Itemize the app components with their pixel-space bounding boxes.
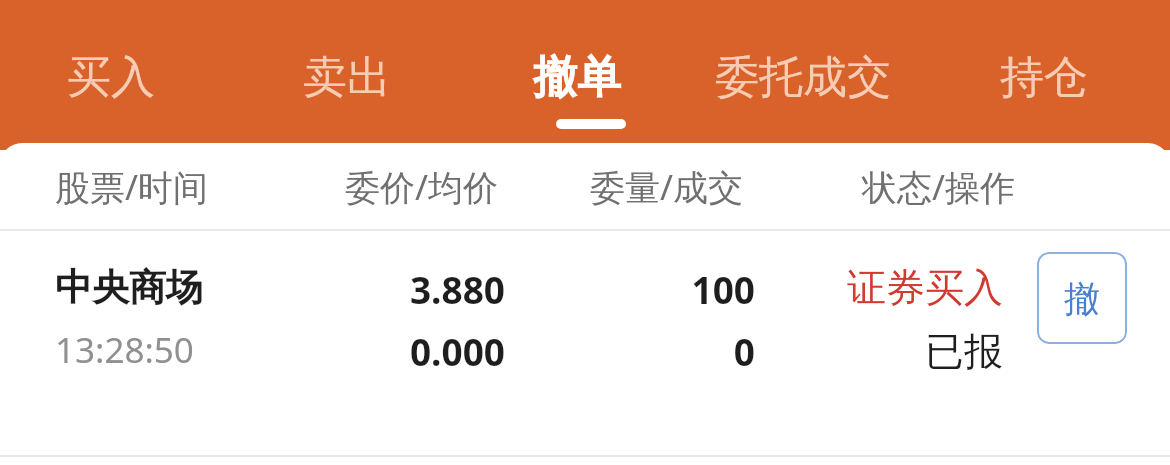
button[interactable]: 持仓 — [1000, 42, 1100, 112]
button[interactable]: 撤单 — [533, 42, 649, 112]
staticText: 委托成交 — [715, 50, 891, 105]
button[interactable]: 股票/时间 — [55, 159, 209, 215]
button[interactable]: 撤单 — [1037, 252, 1127, 344]
button[interactable]: 卖出 — [303, 42, 401, 112]
staticText: 持仓 — [1000, 50, 1088, 105]
staticText: 0 — [545, 326, 755, 376]
button[interactable]: 委价/均价 — [345, 159, 499, 215]
button[interactable]: 中央商场 — [0, 231, 1170, 455]
staticText: 已报 — [780, 327, 1003, 376]
staticText: 13:28:50 — [55, 326, 194, 374]
staticText: 买入 — [67, 50, 155, 105]
staticText: 股票/时间 — [55, 163, 209, 211]
staticText: 3.880 — [245, 264, 505, 314]
staticText: 状态/操作 — [862, 163, 1016, 211]
staticText: 委量/成交 — [590, 163, 744, 211]
button[interactable]: 委托成交 — [715, 42, 915, 112]
button[interactable]: 状态/操作 — [862, 159, 1016, 215]
button[interactable]: 委量/成交 — [590, 159, 744, 215]
staticText: 100 — [545, 264, 755, 314]
button[interactable]: 买入 — [67, 42, 165, 112]
staticText: 撤 — [1064, 276, 1100, 321]
staticText: 撤单 — [533, 50, 621, 105]
staticText: 证券买入 — [780, 263, 1003, 312]
staticText: 中央商场 — [55, 264, 203, 311]
staticText: 卖出 — [303, 50, 391, 105]
staticText: 0.000 — [245, 326, 505, 376]
staticText: 委价/均价 — [345, 163, 499, 211]
